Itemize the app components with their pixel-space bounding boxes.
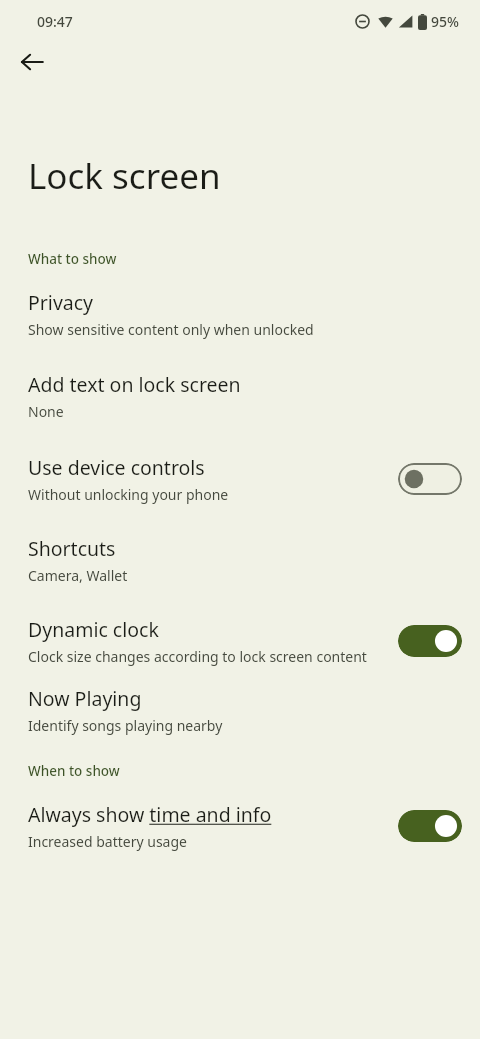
staticText: Lock screen xyxy=(28,152,221,200)
staticText: Clock size changes according to lock scr… xyxy=(28,647,367,666)
staticText: When to show xyxy=(28,762,120,780)
button[interactable]: Shortcuts xyxy=(0,535,480,585)
staticText: Camera, Wallet xyxy=(28,566,128,585)
button[interactable]: Dynamic clock xyxy=(0,616,480,666)
staticText: Add text on lock screen xyxy=(28,371,241,398)
staticText: What to show xyxy=(28,250,117,268)
staticText: Dynamic clock xyxy=(28,616,159,643)
button[interactable]: Always show time and info xyxy=(0,801,480,851)
staticText: Shortcuts xyxy=(28,535,116,562)
staticText: Without unlocking your phone xyxy=(28,485,229,504)
staticText: None xyxy=(28,402,64,421)
button[interactable]: Toggle on xyxy=(398,625,462,657)
button[interactable]: Add text on lock screen xyxy=(0,371,480,421)
button[interactable]: Back xyxy=(12,42,52,82)
staticText: Use device controls xyxy=(28,454,205,481)
staticText: Now Playing xyxy=(28,685,142,712)
staticText: 95% xyxy=(431,12,459,31)
staticText: Increased battery usage xyxy=(28,832,187,851)
button[interactable]: Privacy xyxy=(0,289,480,339)
staticText: Privacy xyxy=(28,289,94,316)
staticText: Always show time and info xyxy=(28,801,272,828)
button[interactable]: Toggle off xyxy=(398,463,462,495)
staticText: Identify songs playing nearby xyxy=(28,716,223,735)
staticText: Show sensitive content only when unlocke… xyxy=(28,320,314,339)
button[interactable]: Toggle on xyxy=(398,810,462,842)
button[interactable]: Now Playing xyxy=(0,685,480,735)
button[interactable]: Use device controls xyxy=(0,454,480,504)
staticText: 09:47 xyxy=(37,12,73,31)
